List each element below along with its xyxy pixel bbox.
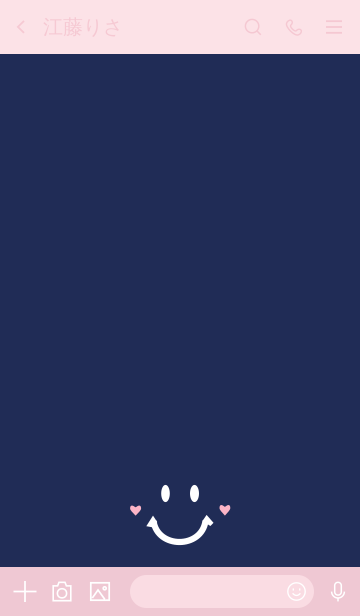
button[interactable]: Photo library	[86, 567, 114, 616]
button[interactable]: Add attachment	[10, 567, 40, 616]
button[interactable]: Camera	[48, 567, 76, 616]
button[interactable]: Voice message	[325, 567, 351, 616]
button[interactable]: Search	[233, 0, 273, 54]
button[interactable]: Message field	[130, 575, 314, 608]
button[interactable]: Call	[273, 0, 314, 54]
staticText: 江藤りさ	[43, 15, 123, 39]
button[interactable]: Menu	[314, 0, 354, 54]
